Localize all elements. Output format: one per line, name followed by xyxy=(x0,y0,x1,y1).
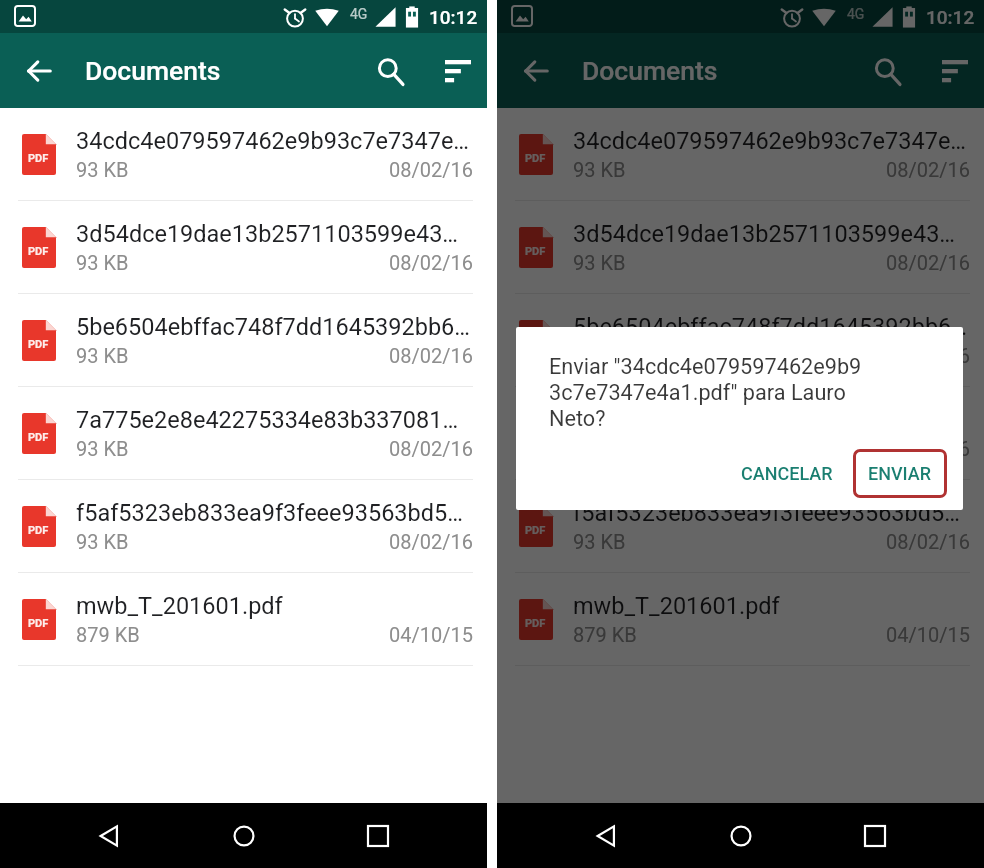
staticText: 93 KB xyxy=(76,344,129,367)
button[interactable]: Sort xyxy=(432,45,484,97)
staticText: 08/02/16 xyxy=(886,344,970,367)
staticText: 08/02/16 xyxy=(389,437,473,460)
staticText: 08/02/16 xyxy=(886,158,970,181)
button[interactable]: Home xyxy=(716,811,766,861)
button[interactable]: Dismiss dialog xyxy=(497,0,984,803)
staticText: mwb_T_201601.pdf xyxy=(573,592,780,620)
staticText: 3c7e7347e4a1.pdf" para Lauro xyxy=(549,380,846,405)
staticText: 08/02/16 xyxy=(389,251,473,274)
staticText: PDF xyxy=(28,152,49,165)
staticText: 93 KB xyxy=(573,251,626,274)
other: Screenshot captured xyxy=(15,6,35,26)
button[interactable]: PDF xyxy=(497,294,984,387)
button[interactable]: Back xyxy=(84,811,134,861)
staticText: 04/10/15 xyxy=(886,623,970,646)
staticText: 08/02/16 xyxy=(389,530,473,553)
button[interactable]: PDF xyxy=(0,294,487,387)
staticText: f5af5323eb833ea9f3feee93563bd5… xyxy=(76,499,463,527)
button[interactable]: Back xyxy=(581,811,631,861)
staticText: 879 KB xyxy=(76,623,140,646)
button[interactable]: Back xyxy=(13,45,65,97)
button[interactable]: Search xyxy=(862,45,914,97)
button[interactable]: ENVIAR xyxy=(853,449,947,498)
staticText: 10:12 xyxy=(926,6,975,28)
other: Screenshot captured xyxy=(512,6,532,26)
staticText: 04/10/15 xyxy=(389,623,473,646)
staticText: ENVIAR xyxy=(868,463,932,484)
staticText: 93 KB xyxy=(76,530,129,553)
button[interactable]: PDF xyxy=(0,387,487,480)
staticText: PDF xyxy=(525,152,546,165)
staticText: 34cdc4e079597462e9b93c7e7347e… xyxy=(573,127,967,155)
button[interactable]: PDF xyxy=(497,480,984,573)
staticText: 7a775e2e8e42275334e83b337081… xyxy=(76,406,459,434)
staticText: 34cdc4e079597462e9b93c7e7347e… xyxy=(76,127,470,155)
staticText: Neto? xyxy=(549,406,606,431)
staticText: 4G xyxy=(847,6,865,22)
staticText: 879 KB xyxy=(573,623,637,646)
staticText: 5be6504ebffac748f7dd1645392bb6… xyxy=(76,313,471,341)
staticText: 08/02/16 xyxy=(389,158,473,181)
button[interactable]: PDF xyxy=(0,480,487,573)
button[interactable]: Search xyxy=(365,45,417,97)
staticText: 3d54dce19dae13b2571103599e43… xyxy=(76,220,459,248)
staticText: PDF xyxy=(28,431,49,444)
staticText: PDF xyxy=(525,617,546,630)
staticText: 4G xyxy=(350,6,368,22)
button[interactable]: PDF xyxy=(497,108,984,201)
staticText: mwb_T_201601.pdf xyxy=(76,592,283,620)
staticText: PDF xyxy=(525,524,546,537)
button[interactable]: PDF xyxy=(497,201,984,294)
staticText: 93 KB xyxy=(573,344,626,367)
staticText: 93 KB xyxy=(573,530,626,553)
button[interactable]: Recents xyxy=(850,811,900,861)
staticText: PDF xyxy=(28,617,49,630)
staticText: 08/02/16 xyxy=(886,437,970,460)
button[interactable]: Back xyxy=(510,45,562,97)
staticText: 93 KB xyxy=(76,251,129,274)
button[interactable]: PDF xyxy=(0,201,487,294)
staticText: 5be6504ebffac748f7dd1645392bb6… xyxy=(573,313,968,341)
staticText: 08/02/16 xyxy=(389,344,473,367)
staticText: CANCELAR xyxy=(741,463,833,484)
button[interactable]: Home xyxy=(219,811,269,861)
staticText: 08/02/16 xyxy=(886,251,970,274)
staticText: PDF xyxy=(28,245,49,258)
staticText: 93 KB xyxy=(76,158,129,181)
button[interactable]: PDF xyxy=(497,573,984,666)
staticText: 3d54dce19dae13b2571103599e43… xyxy=(573,220,956,248)
staticText: Documents xyxy=(85,55,221,86)
staticText: PDF xyxy=(28,338,49,351)
staticText: Documents xyxy=(582,55,718,86)
staticText: 93 KB xyxy=(573,158,626,181)
staticText: 93 KB xyxy=(76,437,129,460)
staticText: f5af5323eb833ea9f3feee93563bd5… xyxy=(573,499,960,527)
button[interactable]: PDF xyxy=(0,108,487,201)
button[interactable]: Recents xyxy=(353,811,403,861)
button[interactable]: CANCELAR xyxy=(727,451,847,496)
staticText: PDF xyxy=(525,245,546,258)
staticText: 10:12 xyxy=(429,6,478,28)
staticText: 7a775e2e8e42275334e83b337081… xyxy=(573,406,956,434)
staticText: 08/02/16 xyxy=(886,530,970,553)
button[interactable]: PDF xyxy=(497,387,984,480)
staticText: PDF xyxy=(28,524,49,537)
staticText: Enviar "34cdc4e079597462e9b9 xyxy=(549,354,862,379)
button[interactable]: Sort xyxy=(929,45,981,97)
button[interactable]: PDF xyxy=(0,573,487,666)
